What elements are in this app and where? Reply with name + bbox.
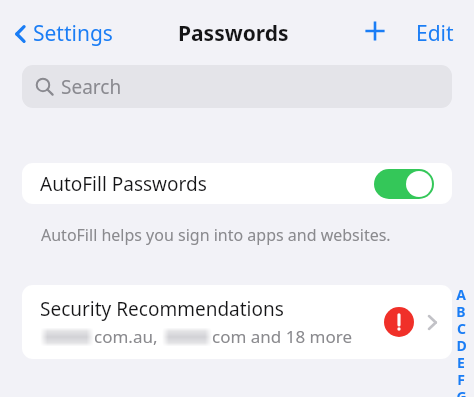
staticText: Passwords [178,19,289,48]
staticText: AutoFill Passwords [40,171,207,197]
staticText: D [456,336,467,353]
other: Warning [384,307,414,337]
button[interactable]: Settings [10,16,117,51]
staticText: Edit [416,19,454,48]
staticText: AutoFill helps you sign into apps and we… [41,224,391,246]
staticText: G [456,387,467,397]
button[interactable]: Search [22,65,452,108]
staticText: Security Recommendations [40,296,284,322]
staticText: Search [61,74,122,100]
staticText: C [457,319,466,336]
button[interactable]: Security Recommendations [22,285,452,359]
staticText: A [456,285,466,302]
button[interactable]: AutoFill Passwords toggle, on [374,169,434,199]
staticText: com.au, [94,325,162,348]
button[interactable]: AutoFill Passwords [22,163,452,204]
staticText: Settings [33,19,113,48]
button[interactable]: Alphabet index [452,285,470,397]
staticText: F [457,370,465,387]
button[interactable]: Edit [411,16,459,51]
button[interactable]: Add password [358,14,392,48]
staticText: com and 18 more [212,325,352,348]
staticText: E [457,353,465,370]
staticText: B [456,302,466,319]
